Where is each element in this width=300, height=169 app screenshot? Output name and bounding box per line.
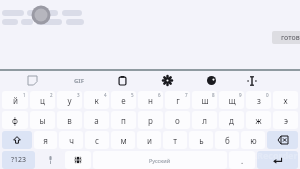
staticText: 2 [50,92,53,98]
button[interactable]: Backspace [267,131,298,149]
staticText: XRecorder [251,149,298,161]
staticText: GIF [74,77,84,85]
staticText: 0 [266,92,269,98]
staticText: 7 [185,92,188,98]
button[interactable]: ы [30,111,55,129]
button[interactable]: Stickers [24,71,41,90]
staticText: Русский [149,157,171,164]
button[interactable]: ?123 [2,151,35,169]
staticText: п [121,115,126,126]
staticText: ф [12,115,18,126]
button[interactable]: Text editing [243,71,260,90]
button[interactable]: о [165,111,190,129]
staticText: х [283,95,288,106]
staticText: ю [250,135,257,146]
button[interactable]: г [165,91,190,109]
staticText: м [120,135,127,146]
button[interactable]: Clipboard [114,71,131,90]
button[interactable]: с [85,131,109,149]
button[interactable]: н [138,91,163,109]
staticText: н [148,95,153,106]
staticText: 9 [239,92,242,98]
staticText: о [175,115,180,126]
staticText: 8 [212,92,215,98]
button[interactable]: Change language [65,151,91,169]
button[interactable]: ф [2,111,28,129]
button[interactable]: ш [192,91,217,109]
button[interactable]: к [84,91,109,109]
button[interactable]: щ [219,91,244,109]
staticText: б [225,135,230,146]
staticText: 3 [77,92,80,98]
staticText: з [257,95,261,106]
staticText: у [67,95,72,106]
button[interactable]: э [273,111,298,129]
staticText: ц [40,95,45,106]
staticText: р [148,115,153,126]
staticText: в [67,115,72,126]
staticText: с [95,135,99,146]
staticText: ч [69,135,74,146]
button[interactable]: б [215,131,239,149]
button[interactable]: р [138,111,163,129]
staticText: и [147,135,152,146]
button[interactable]: Enter [257,151,298,169]
button[interactable]: д [219,111,244,129]
button[interactable]: а [84,111,109,129]
button[interactable]: у [57,91,82,109]
button[interactable]: . [229,151,255,169]
staticText: 4 [104,92,107,98]
staticText: ь [199,135,204,146]
staticText: ?123 [11,155,27,165]
staticText: е [121,95,126,106]
button[interactable]: Theme [203,71,220,90]
staticText: ы [39,115,46,126]
staticText: 1 [23,92,26,98]
staticText: 5 [131,92,134,98]
staticText: щ [228,95,236,106]
staticText: э [284,115,288,126]
button[interactable]: х [273,91,298,109]
button[interactable]: Shift [2,131,32,149]
button[interactable]: готово [272,31,300,44]
staticText: . [241,155,244,166]
button[interactable]: л [192,111,217,129]
button[interactable]: Settings [159,71,176,90]
button[interactable]: ж [246,111,271,129]
staticText: л [202,115,207,126]
button[interactable]: Voice input [37,151,63,169]
staticText: ш [201,95,209,106]
staticText: а [94,115,99,126]
button[interactable]: GIF [70,71,87,90]
button[interactable]: Русский [93,151,227,169]
staticText: й [13,95,18,106]
button[interactable]: ю [241,131,265,149]
staticText: т [173,135,177,146]
staticText: я [43,135,48,146]
button[interactable]: й [2,91,28,109]
button[interactable]: е [111,91,136,109]
staticText: к [94,95,99,106]
staticText: д [229,115,234,126]
button[interactable]: ц [30,91,55,109]
button[interactable]: в [57,111,82,129]
button[interactable]: м [111,131,135,149]
button[interactable]: т [163,131,187,149]
staticText: ж [255,115,262,126]
button[interactable]: ь [189,131,213,149]
staticText: г [176,95,180,106]
staticText: готово [281,33,300,43]
button[interactable]: з [246,91,271,109]
button[interactable]: п [111,111,136,129]
button[interactable]: ч [59,131,83,149]
button[interactable]: и [137,131,161,149]
button[interactable]: я [34,131,57,149]
staticText: 6 [158,92,161,98]
